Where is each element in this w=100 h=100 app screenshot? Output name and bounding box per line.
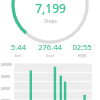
- staticText: 7,199: [35, 0, 66, 16]
- staticText: 276.44: [38, 42, 62, 52]
- staticText: kcal: [46, 53, 54, 58]
- button[interactable]: 02:55: [66, 42, 98, 58]
- staticText: 02:55: [72, 42, 92, 52]
- staticText: 時間: [78, 53, 86, 58]
- staticText: Steps: [44, 18, 57, 25]
- button[interactable]: 7,199: [0, 0, 100, 25]
- staticText: km: [15, 53, 21, 58]
- staticText: 5.44: [11, 42, 26, 52]
- button[interactable]: Hourly step chart: [0, 61, 100, 100]
- button[interactable]: Step goal progress: [0, 0, 100, 44]
- button[interactable]: 276.44: [34, 42, 66, 58]
- button[interactable]: 5.44: [2, 42, 34, 58]
